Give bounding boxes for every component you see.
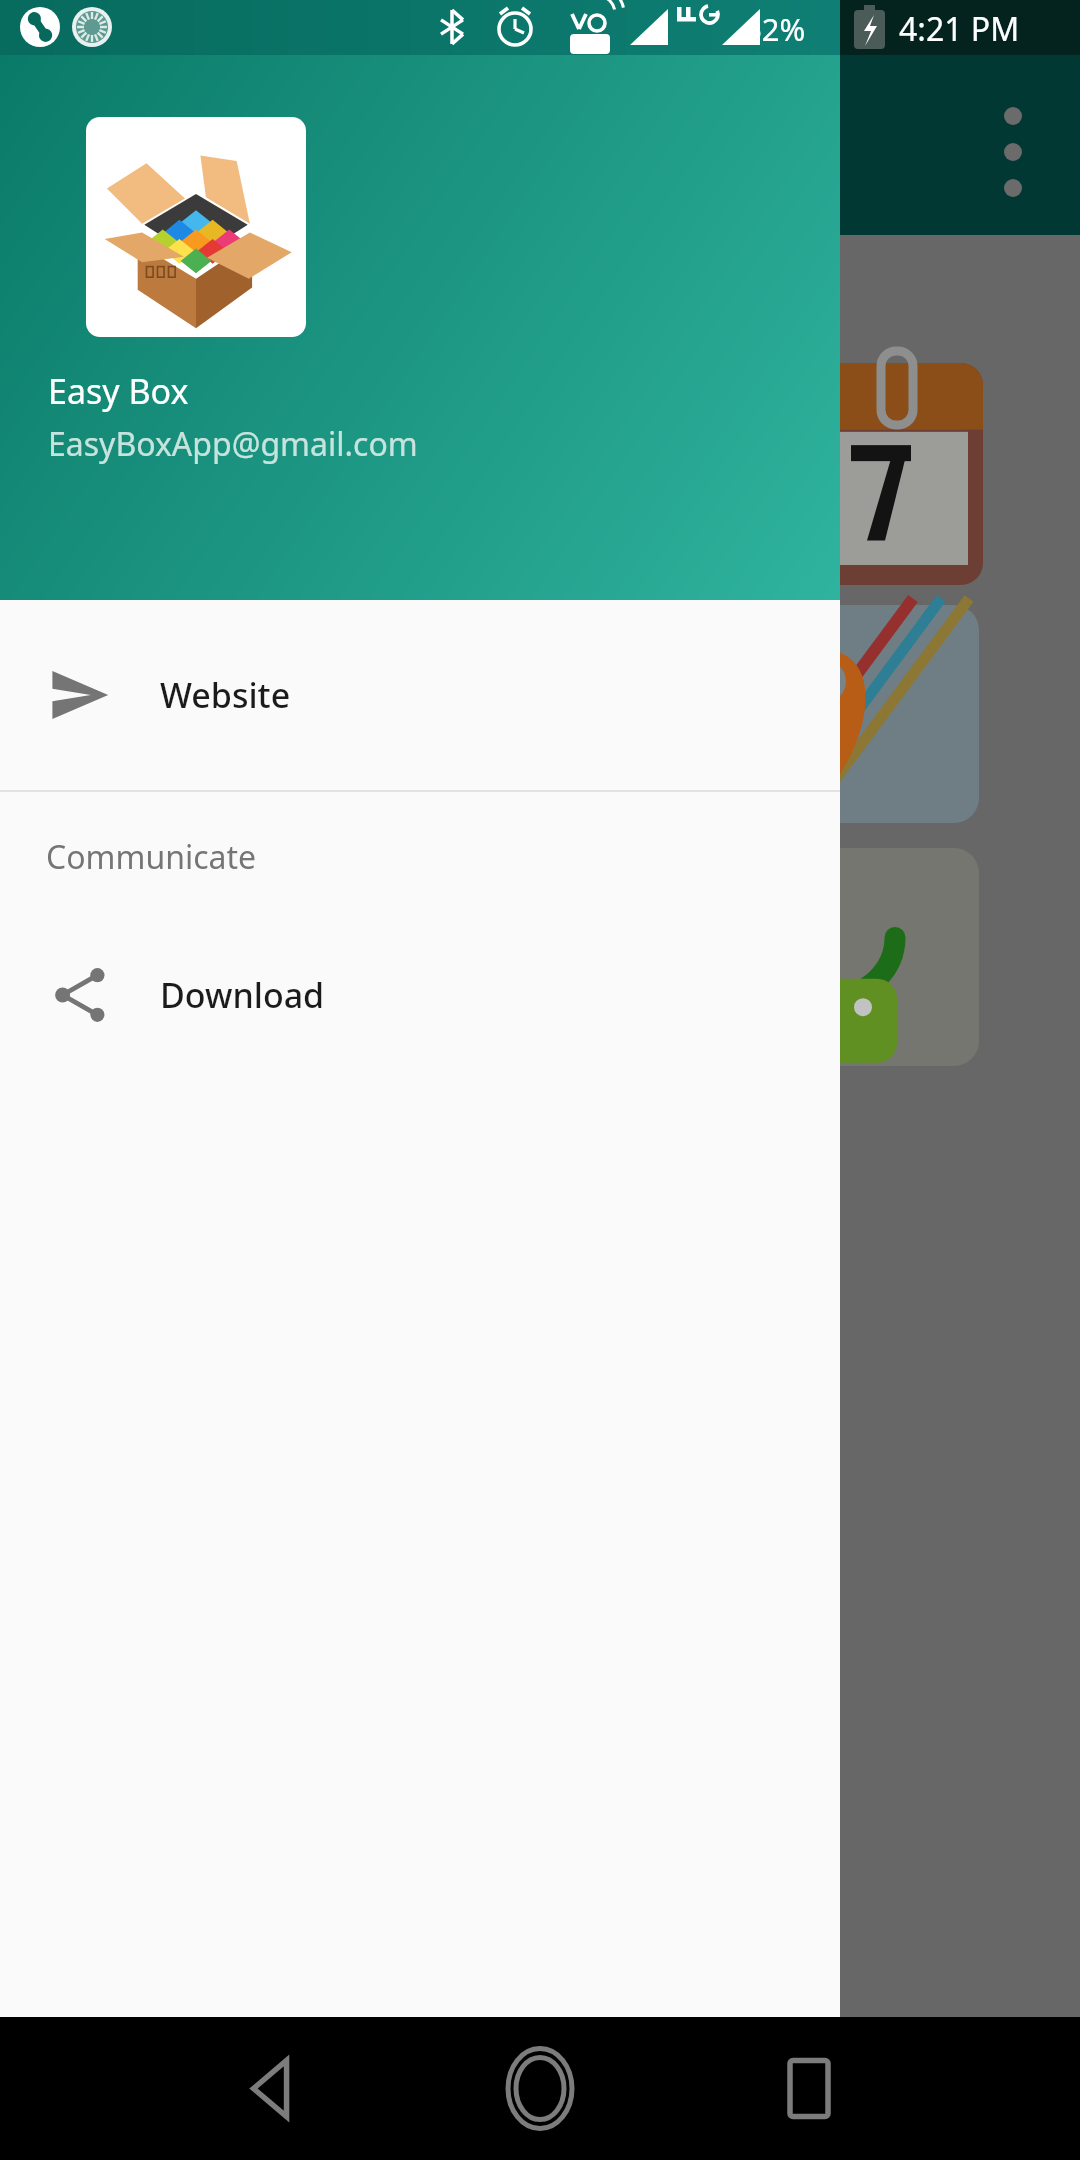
button[interactable]: Back <box>0 2017 360 2160</box>
staticText: Website <box>160 672 291 718</box>
button[interactable]: Home <box>360 2017 720 2160</box>
staticText: Communicate <box>46 835 257 879</box>
staticText: 4:21 PM <box>899 7 1020 51</box>
staticText: Download <box>160 972 325 1018</box>
staticText: 62% <box>744 8 806 50</box>
button[interactable]: Website <box>0 600 840 790</box>
staticText: Easy Box <box>48 368 189 414</box>
staticText: EasyBoxApp@gmail.com <box>48 422 418 466</box>
button[interactable]: Download <box>0 922 840 1067</box>
button[interactable]: Recent apps <box>720 2017 1080 2160</box>
